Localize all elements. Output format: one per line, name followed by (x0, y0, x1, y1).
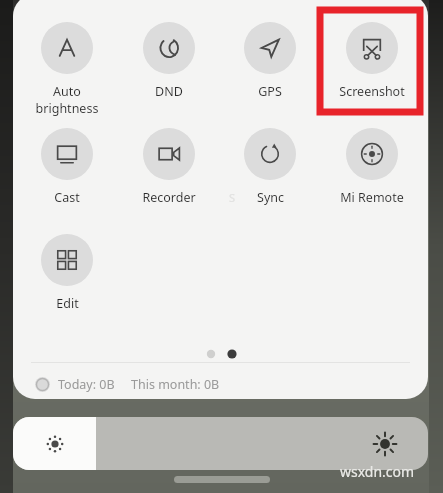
button[interactable]: Low brightness (13, 417, 428, 470)
staticText: S (229, 190, 236, 205)
button[interactable]: Auto brightness (22, 22, 112, 117)
staticText: Edit (56, 295, 79, 312)
staticText: This month: 0B (131, 376, 220, 393)
button[interactable]: Sync (225, 128, 315, 206)
staticText: Recorder (142, 189, 196, 206)
staticText: GPS (258, 83, 282, 100)
button[interactable]: Cast (22, 128, 112, 206)
other: High brightness (372, 431, 398, 457)
button[interactable]: DND (124, 22, 214, 100)
button[interactable]: GPS (225, 22, 315, 100)
button[interactable]: Edit (22, 234, 112, 312)
button[interactable]: Mi Remote (327, 128, 417, 206)
button[interactable]: Data usage (35, 372, 220, 396)
button[interactable]: Recorder (124, 128, 214, 206)
other: Data usage (35, 377, 50, 392)
button[interactable]: Screenshot (327, 22, 417, 100)
staticText: DND (155, 83, 183, 100)
staticText: Auto brightness (22, 83, 112, 117)
staticText: wsxdn.com (340, 462, 415, 481)
staticText: Sync (257, 189, 284, 206)
staticText: Cast (54, 189, 80, 206)
other: Low brightness (43, 432, 67, 456)
staticText: Today: 0B (58, 376, 115, 393)
staticText: Screenshot (339, 83, 405, 100)
staticText: Mi Remote (340, 189, 404, 206)
